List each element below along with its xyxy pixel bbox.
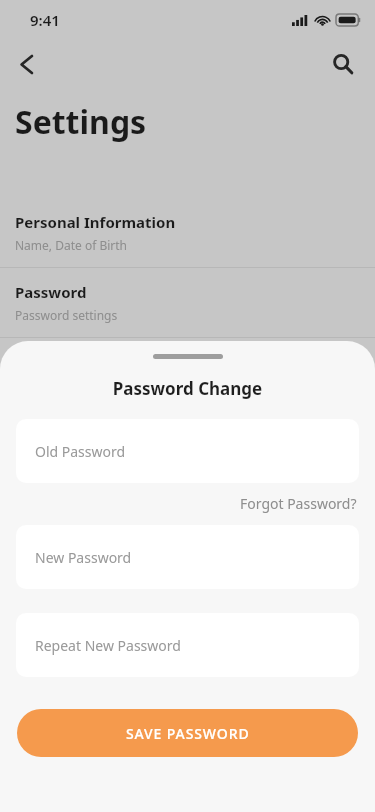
button[interactable]: Password xyxy=(0,268,375,337)
button[interactable]: Back xyxy=(6,44,46,84)
staticText: New Password xyxy=(35,548,132,567)
staticText: Settings xyxy=(15,100,147,144)
button[interactable]: Personal Information xyxy=(0,198,375,267)
button[interactable]: Notifications xyxy=(0,338,375,407)
staticText: Forgot Password? xyxy=(240,494,357,513)
staticText: Password Change xyxy=(0,377,375,400)
staticText: Personal Information xyxy=(15,212,176,232)
staticText: Repeat New Password xyxy=(35,636,181,655)
staticText: Password xyxy=(15,282,87,302)
button[interactable]: SAVE PASSWORD xyxy=(17,709,358,757)
staticText: SAVE PASSWORD xyxy=(126,724,250,743)
button[interactable]: Repeat New Password xyxy=(16,613,359,677)
button[interactable]: Old Password xyxy=(16,419,359,483)
staticText: Name, Date of Birth xyxy=(15,237,127,253)
staticText: 9:41 xyxy=(30,10,60,30)
button[interactable]: Search xyxy=(323,44,363,84)
staticText: Password settings xyxy=(15,307,118,323)
button[interactable]: New Password xyxy=(16,525,359,589)
button[interactable]: Forgot Password? xyxy=(238,491,359,516)
staticText: Old Password xyxy=(35,442,126,461)
